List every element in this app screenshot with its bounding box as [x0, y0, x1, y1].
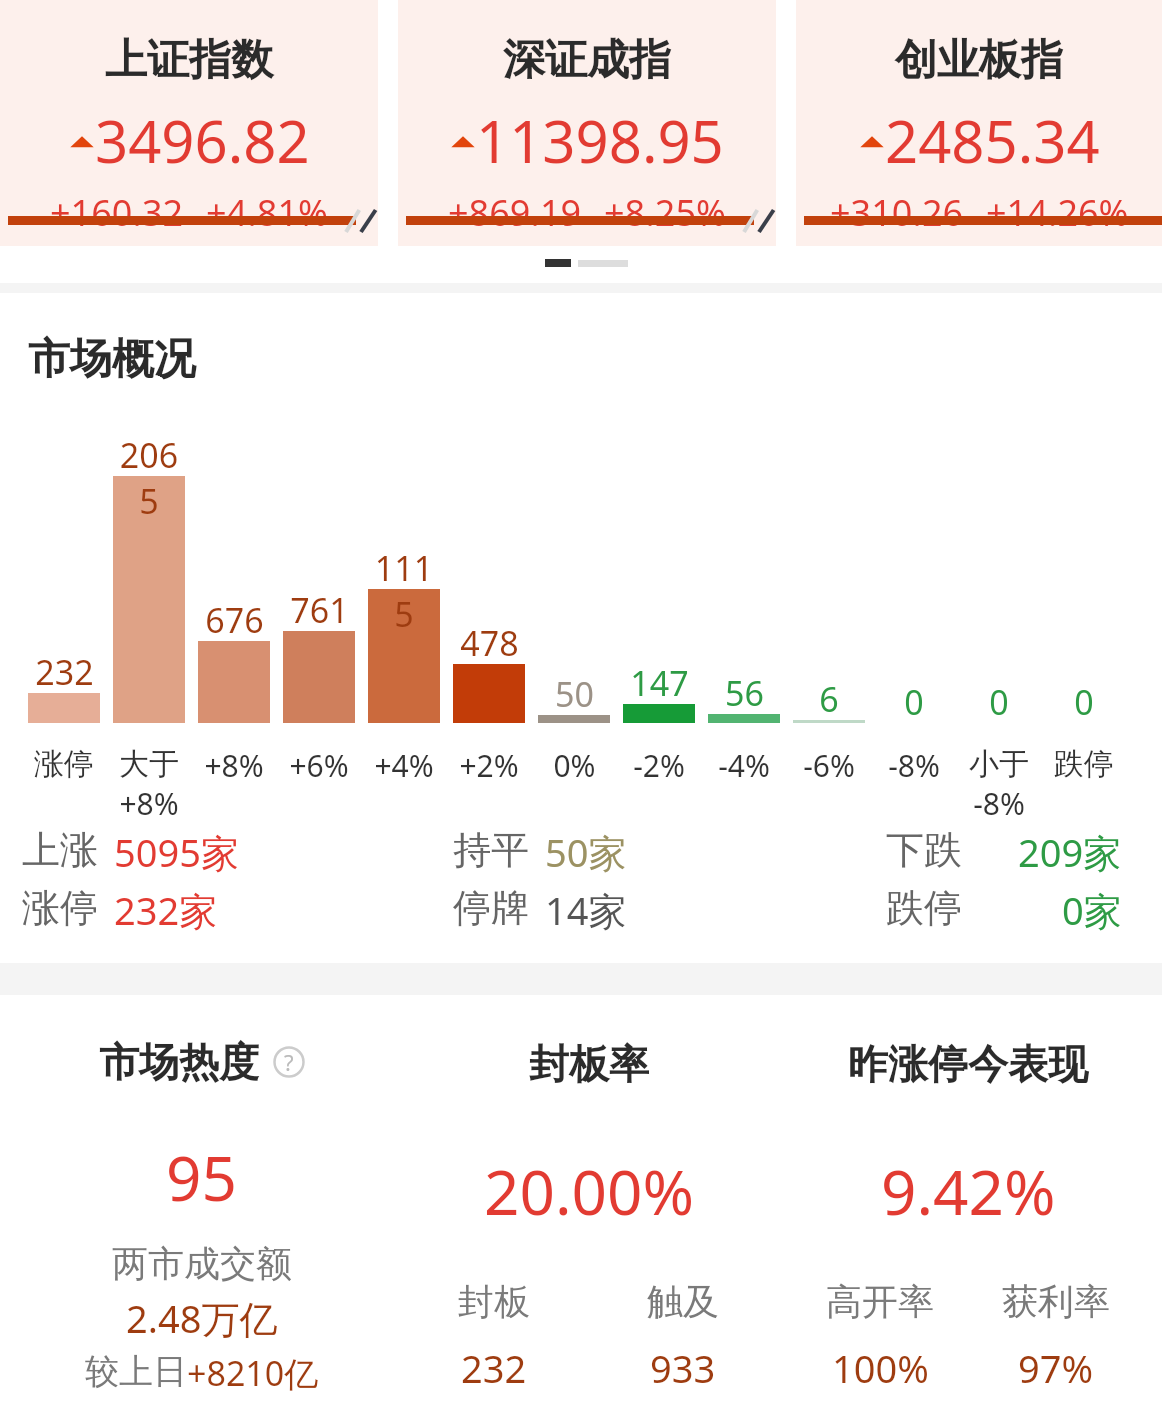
staticText: 上涨 — [22, 826, 98, 874]
staticText: +8% — [204, 745, 264, 786]
staticText: 封板 — [458, 1279, 530, 1324]
staticText: -2% — [633, 745, 685, 786]
staticText: 20.00% — [484, 1149, 694, 1233]
staticText: 478 — [460, 620, 519, 666]
staticText: +2% — [459, 745, 519, 786]
staticText: +8% — [119, 783, 179, 824]
button[interactable]: 深证成指 — [398, 0, 776, 246]
staticText: 14家 — [545, 884, 627, 936]
staticText: 11398.95 — [476, 101, 724, 180]
staticText: +869.19 — [448, 188, 582, 237]
staticText: 获利率 — [1002, 1279, 1110, 1324]
staticText: 市场概况 — [28, 333, 196, 386]
staticText: 0家 — [1062, 884, 1122, 936]
staticText: 56 — [725, 670, 764, 716]
staticText: 5095家 — [114, 826, 239, 878]
staticText: 跌停 — [886, 884, 962, 932]
staticText: 9.42% — [881, 1149, 1056, 1233]
staticText: 创业板指 — [895, 34, 1063, 87]
staticText: 持平 — [453, 826, 529, 874]
staticText: 676 — [205, 597, 264, 643]
staticText: +160.32 — [50, 188, 184, 237]
staticText: 50 — [555, 671, 594, 717]
staticText: 深证成指 — [503, 34, 671, 87]
staticText: -4% — [718, 745, 770, 786]
staticText: 0 — [904, 679, 924, 725]
button[interactable]: 帮助 — [273, 1046, 305, 1078]
staticText: 触及 — [647, 1279, 719, 1324]
staticText: 2065 — [113, 432, 185, 524]
button[interactable]: 封板率 — [400, 995, 777, 1402]
staticText: 100% — [832, 1342, 929, 1394]
staticText: 大于 — [119, 745, 179, 783]
staticText: 上证指数 — [105, 34, 273, 87]
staticText: 6 — [819, 676, 839, 722]
staticText: 涨停 — [34, 745, 94, 783]
staticText: -6% — [803, 745, 855, 786]
staticText: 232 — [35, 649, 94, 695]
staticText: 封板率 — [529, 1039, 649, 1089]
staticText: 停牌 — [453, 884, 529, 932]
staticText: +8.25% — [604, 188, 726, 237]
staticText: 昨涨停今表现 — [848, 1039, 1088, 1089]
staticText: 761 — [290, 587, 349, 633]
staticText: 1115 — [368, 545, 440, 637]
staticText: 小于 — [969, 745, 1029, 783]
staticText: -8% — [973, 783, 1025, 824]
staticText: 50家 — [545, 826, 627, 878]
staticText: 较上日 — [85, 1350, 187, 1393]
staticText: 97% — [1018, 1342, 1094, 1394]
staticText: 跌停 — [1054, 745, 1114, 783]
button[interactable]: 昨涨停今表现 — [792, 995, 1144, 1402]
staticText: -8% — [888, 745, 940, 786]
staticText: 147 — [630, 660, 689, 706]
staticText: +6% — [289, 745, 349, 786]
staticText: 0% — [553, 745, 596, 786]
button[interactable]: 市场热度 — [18, 995, 385, 1402]
staticText: ? — [284, 1047, 294, 1077]
staticText: +4% — [374, 745, 434, 786]
staticText: 涨停 — [22, 884, 98, 932]
staticText: 0 — [1074, 679, 1094, 725]
staticText: 2485.34 — [885, 101, 1100, 180]
staticText: 市场热度 — [99, 1037, 259, 1087]
staticText: +310.26 — [830, 188, 964, 237]
staticText: +4.81% — [206, 188, 328, 237]
staticText: +14.26% — [986, 188, 1129, 237]
staticText: 3496.82 — [95, 101, 310, 180]
staticText: 2.48万亿 — [126, 1292, 278, 1344]
button[interactable]: 上证指数 — [0, 0, 378, 246]
staticText: 232 — [461, 1342, 527, 1394]
staticText: 下跌 — [886, 826, 962, 874]
staticText: 933 — [650, 1342, 716, 1394]
staticText: 232家 — [114, 884, 218, 936]
staticText: +8210亿 — [187, 1350, 319, 1396]
staticText: 95 — [166, 1135, 237, 1219]
staticText: 高开率 — [826, 1279, 934, 1324]
button[interactable]: 创业板指 — [796, 0, 1162, 246]
staticText: 209家 — [1018, 826, 1122, 878]
staticText: 0 — [989, 679, 1009, 725]
staticText: 两市成交额 — [112, 1241, 292, 1286]
